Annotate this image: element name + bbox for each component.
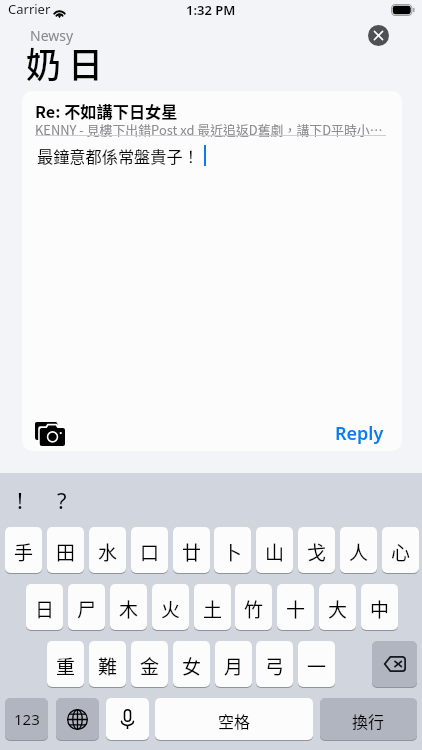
button[interactable]: 心 bbox=[382, 527, 419, 573]
staticText: Reply bbox=[335, 421, 384, 446]
button[interactable]: 廿 bbox=[173, 527, 210, 573]
staticText: 口 bbox=[140, 538, 160, 566]
staticText: KENNY - 見樓下出錯Post xd 最近追返D舊劇，講下D平時小… bbox=[35, 120, 383, 139]
button[interactable]: 田 bbox=[47, 527, 84, 573]
staticText: 木 bbox=[119, 595, 139, 623]
staticText: 月 bbox=[224, 652, 244, 680]
button[interactable]: Backspace bbox=[372, 641, 417, 687]
staticText: 水 bbox=[98, 538, 118, 566]
staticText: 中 bbox=[370, 595, 390, 623]
staticText: Carrier bbox=[8, 0, 51, 18]
button[interactable]: 空格 bbox=[155, 698, 313, 740]
staticText: 女 bbox=[182, 652, 202, 680]
button[interactable]: 卜 bbox=[214, 527, 251, 573]
button[interactable]: 大 bbox=[319, 584, 356, 630]
button[interactable]: 土 bbox=[194, 584, 231, 630]
button[interactable]: Dictation bbox=[106, 698, 149, 740]
button[interactable]: ! bbox=[10, 485, 30, 513]
button[interactable]: 重 bbox=[47, 641, 84, 687]
staticText: 戈 bbox=[307, 538, 327, 566]
button[interactable]: 口 bbox=[131, 527, 168, 573]
staticText: 人 bbox=[349, 538, 369, 566]
staticText: 重 bbox=[56, 652, 76, 680]
button[interactable]: 竹 bbox=[235, 584, 272, 630]
button[interactable]: 尸 bbox=[68, 584, 105, 630]
staticText: Re: 不如講下日女星 bbox=[35, 99, 178, 122]
button[interactable]: 人 bbox=[340, 527, 377, 573]
button[interactable]: 月 bbox=[215, 641, 252, 687]
button[interactable]: 十 bbox=[277, 584, 314, 630]
staticText: 火 bbox=[161, 595, 181, 623]
staticText: 換行 bbox=[352, 709, 385, 732]
staticText: 123 bbox=[14, 709, 40, 729]
button[interactable]: Next keyboard bbox=[56, 698, 99, 740]
button[interactable]: Close bbox=[368, 25, 389, 46]
staticText: ? bbox=[57, 485, 67, 513]
staticText: 尸 bbox=[77, 595, 97, 623]
button[interactable]: Insert photo bbox=[35, 422, 65, 446]
button[interactable]: 換行 bbox=[320, 698, 417, 740]
button[interactable]: 難 bbox=[89, 641, 126, 687]
staticText: 田 bbox=[56, 538, 76, 566]
staticText: 1:32 PM bbox=[186, 1, 236, 19]
button[interactable]: 一 bbox=[298, 641, 335, 687]
staticText: 金 bbox=[140, 652, 160, 680]
button[interactable]: 山 bbox=[256, 527, 293, 573]
staticText: 心 bbox=[391, 538, 411, 566]
staticText: ! bbox=[17, 485, 23, 513]
button[interactable]: 123 bbox=[5, 698, 48, 740]
button[interactable]: 戈 bbox=[298, 527, 335, 573]
staticText: 一 bbox=[307, 652, 327, 680]
staticText: 空格 bbox=[218, 709, 251, 732]
button[interactable]: 日 bbox=[26, 584, 63, 630]
button[interactable]: 弓 bbox=[256, 641, 293, 687]
button[interactable]: ? bbox=[52, 485, 72, 513]
staticText: 難 bbox=[98, 652, 118, 680]
button[interactable]: 女 bbox=[173, 641, 210, 687]
staticText: 卜 bbox=[223, 538, 243, 566]
button[interactable]: 火 bbox=[152, 584, 189, 630]
staticText: 山 bbox=[265, 538, 285, 566]
staticText: 土 bbox=[203, 595, 223, 623]
staticText: 十 bbox=[286, 595, 306, 623]
button[interactable]: Reply bbox=[335, 421, 384, 446]
staticText: 竹 bbox=[244, 595, 264, 623]
button[interactable]: 木 bbox=[110, 584, 147, 630]
staticText: 手 bbox=[14, 538, 34, 566]
button[interactable]: 水 bbox=[89, 527, 126, 573]
staticText: 廿 bbox=[182, 538, 202, 566]
button[interactable]: 金 bbox=[131, 641, 168, 687]
staticText: 大 bbox=[328, 595, 348, 623]
button[interactable]: 手 bbox=[5, 527, 42, 573]
staticText: 弓 bbox=[265, 652, 285, 680]
staticText: 最鐘意都係常盤貴子！ bbox=[37, 144, 199, 167]
staticText: 奶日 bbox=[26, 37, 111, 88]
staticText: Newsy bbox=[30, 26, 74, 45]
staticText: 日 bbox=[35, 595, 55, 623]
button[interactable]: 中 bbox=[361, 584, 398, 630]
